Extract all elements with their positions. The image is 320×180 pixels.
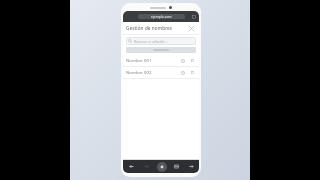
staticText: Nombre 001: [126, 58, 152, 64]
button[interactable]: Edit: [179, 57, 186, 64]
button[interactable]: Nombre 002: [123, 67, 199, 78]
button[interactable]: More: [184, 160, 199, 173]
staticText: Nombre 002: [126, 70, 152, 76]
button[interactable]: Buscar o añadir...: [126, 37, 196, 45]
button[interactable]: Back: [123, 160, 139, 173]
button[interactable]: Edit: [179, 69, 186, 76]
staticText: ejemplo.com: [151, 15, 172, 19]
button[interactable]: Nombre 001: [123, 55, 199, 66]
button[interactable]: Close: [187, 24, 196, 33]
button[interactable]: Tabs: [169, 160, 184, 173]
staticText: Gestión de nombres: [126, 25, 173, 31]
button[interactable]: Delete: [189, 57, 196, 64]
button[interactable]: [126, 47, 196, 53]
button[interactable]: ejemplo.com: [138, 14, 185, 19]
button[interactable]: Reader mode: [191, 14, 197, 20]
staticText: Buscar o añadir...: [134, 39, 168, 44]
button[interactable]: Forward: [139, 160, 154, 173]
button[interactable]: Home: [157, 162, 167, 172]
button[interactable]: Delete: [189, 69, 196, 76]
